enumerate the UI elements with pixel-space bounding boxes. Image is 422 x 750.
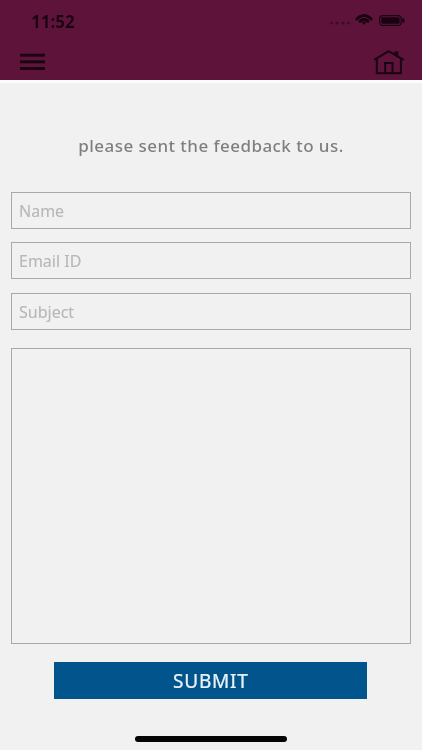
staticText: Email ID (19, 250, 82, 272)
staticText: 11:52 (31, 10, 75, 33)
button[interactable]: Subject (11, 293, 411, 330)
button[interactable]: Home (368, 44, 410, 80)
button[interactable]: Name (11, 192, 411, 229)
button[interactable]: SUBMIT (54, 662, 367, 699)
button[interactable]: Email ID (11, 242, 411, 279)
staticText: Name (19, 200, 65, 222)
button[interactable] (11, 348, 411, 644)
staticText: please sent the feedback to us. (0, 134, 422, 157)
staticText: SUBMIT (173, 668, 249, 694)
staticText: Subject (19, 301, 75, 323)
button[interactable]: Menu (12, 46, 52, 78)
